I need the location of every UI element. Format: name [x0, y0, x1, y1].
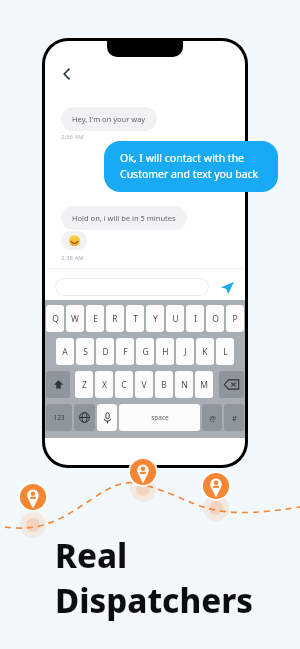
staticText: 123 — [53, 413, 65, 422]
button[interactable]: F — [116, 338, 134, 365]
button[interactable]: # — [224, 404, 244, 431]
button[interactable]: Dispatcher location — [201, 471, 231, 501]
button[interactable]: I — [186, 305, 204, 332]
button[interactable]: Shift — [46, 371, 70, 398]
button[interactable]: C — [115, 371, 133, 398]
button[interactable]: O — [206, 305, 224, 332]
staticText: T — [133, 313, 138, 325]
button[interactable]: Y — [146, 305, 164, 332]
button[interactable]: N — [175, 371, 193, 398]
button[interactable]: space — [119, 404, 200, 431]
button[interactable]: Z — [75, 371, 93, 398]
button[interactable]: B — [155, 371, 173, 398]
staticText: # — [232, 413, 237, 423]
staticText: U — [172, 313, 179, 325]
button[interactable]: R — [106, 305, 124, 332]
staticText: Q — [52, 313, 59, 325]
button[interactable]: Dispatcher location — [18, 482, 48, 512]
staticText: Z — [82, 379, 87, 391]
button[interactable]: D — [96, 338, 114, 365]
button[interactable] — [61, 231, 87, 250]
staticText: D — [102, 346, 109, 358]
button[interactable]: Ok, I will contact with the Customer and… — [104, 141, 278, 192]
staticText: Hold on, i will be in 5 minutes — [72, 213, 176, 223]
staticText: Y — [153, 313, 158, 325]
staticText: Real — [55, 533, 128, 578]
button[interactable]: P — [226, 305, 244, 332]
staticText: M — [200, 379, 208, 391]
staticText: Ok, I will contact with the Customer and… — [120, 151, 259, 181]
staticText: N — [181, 379, 188, 391]
button[interactable]: V — [135, 371, 153, 398]
button[interactable] — [55, 278, 209, 296]
button[interactable]: S — [76, 338, 94, 365]
staticText: Hey, I'm on your way — [72, 114, 146, 124]
button[interactable]: J — [176, 338, 194, 365]
staticText: W — [71, 313, 79, 325]
staticText: 2:38 AM — [61, 254, 84, 262]
staticText: C — [121, 379, 127, 391]
staticText: R — [112, 313, 118, 325]
staticText: E — [93, 313, 98, 325]
button[interactable]: G — [136, 338, 154, 365]
staticText: O — [212, 313, 219, 325]
button[interactable]: Hey, I'm on your way — [61, 107, 157, 131]
button[interactable]: X — [95, 371, 113, 398]
button[interactable]: Change keyboard language — [74, 404, 95, 431]
button[interactable]: T — [126, 305, 144, 332]
staticText: S — [83, 346, 88, 358]
staticText: I — [194, 313, 197, 325]
staticText: P — [232, 313, 238, 325]
button[interactable]: @ — [202, 404, 222, 431]
staticText: J — [184, 346, 187, 358]
button[interactable]: Q — [46, 305, 64, 332]
staticText: F — [123, 346, 128, 358]
button[interactable]: Backspace — [219, 371, 244, 398]
staticText: B — [161, 379, 167, 391]
button[interactable]: A — [56, 338, 74, 365]
staticText: @ — [209, 413, 216, 423]
staticText: X — [102, 379, 107, 391]
staticText: A — [62, 346, 68, 358]
staticText: V — [141, 379, 147, 391]
button[interactable]: K — [196, 338, 214, 365]
button[interactable]: Back — [56, 63, 78, 85]
staticText: 2:36 AM — [61, 133, 84, 141]
staticText: Dispatchers — [55, 578, 254, 623]
button[interactable]: E — [86, 305, 104, 332]
button[interactable]: Send — [217, 277, 237, 297]
button[interactable]: W — [66, 305, 84, 332]
button[interactable]: Hold on, i will be in 5 minutes — [61, 206, 187, 230]
button[interactable]: Dispatcher location — [128, 457, 158, 487]
staticText: space — [151, 413, 169, 422]
staticText: K — [202, 346, 208, 358]
staticText: L — [223, 346, 228, 358]
staticText: H — [162, 346, 169, 358]
button[interactable]: L — [216, 338, 234, 365]
button[interactable]: 123 — [46, 404, 72, 431]
button[interactable]: M — [195, 371, 213, 398]
button[interactable]: Voice input — [97, 404, 117, 431]
button[interactable]: U — [166, 305, 184, 332]
staticText: G — [142, 346, 149, 358]
button[interactable]: H — [156, 338, 174, 365]
